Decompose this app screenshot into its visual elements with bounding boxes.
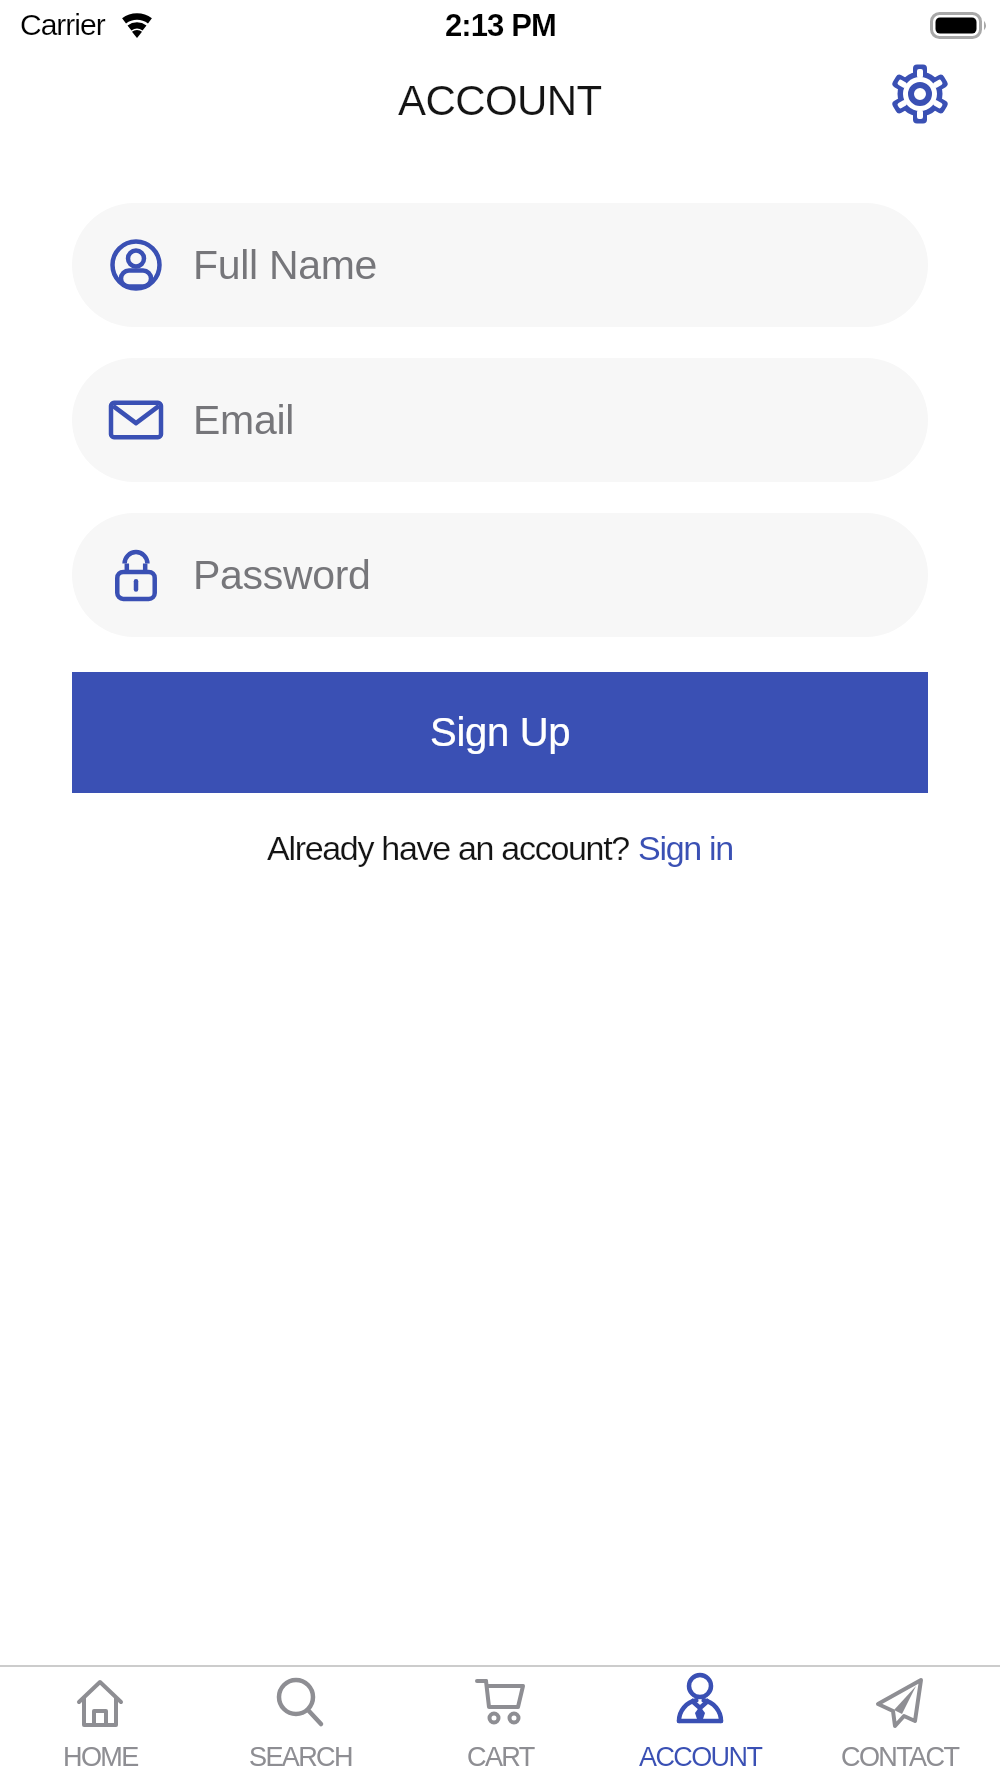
staticText: CART	[467, 1742, 534, 1772]
staticText: HOME	[63, 1742, 138, 1772]
staticText: ACCOUNT	[639, 1742, 762, 1772]
staticText: ACCOUNT	[398, 77, 602, 124]
staticText: Full Name	[193, 242, 378, 288]
staticText: Password	[193, 552, 371, 598]
button[interactable]: CONTACT	[800, 1667, 1000, 1778]
staticText: 2:13 PM	[445, 8, 556, 43]
staticText: Sign Up	[430, 710, 571, 755]
button[interactable]: Sign Up	[72, 672, 928, 793]
button[interactable]: SEARCH	[200, 1667, 400, 1778]
staticText: CONTACT	[841, 1742, 959, 1772]
staticText: Email	[193, 397, 295, 443]
button[interactable]: Password	[72, 513, 928, 637]
staticText: SEARCH	[249, 1742, 352, 1772]
button[interactable]: HOME	[0, 1667, 200, 1778]
button[interactable]: ACCOUNT	[600, 1667, 800, 1778]
button[interactable]	[890, 64, 950, 124]
staticText: Carrier	[20, 8, 105, 42]
button[interactable]: Sign in	[638, 829, 733, 867]
staticText: Already have an account?	[267, 829, 638, 867]
staticText: Sign in	[638, 829, 733, 867]
button[interactable]: Email	[72, 358, 928, 482]
button[interactable]: Full Name	[72, 203, 928, 327]
button[interactable]: CART	[400, 1667, 600, 1778]
